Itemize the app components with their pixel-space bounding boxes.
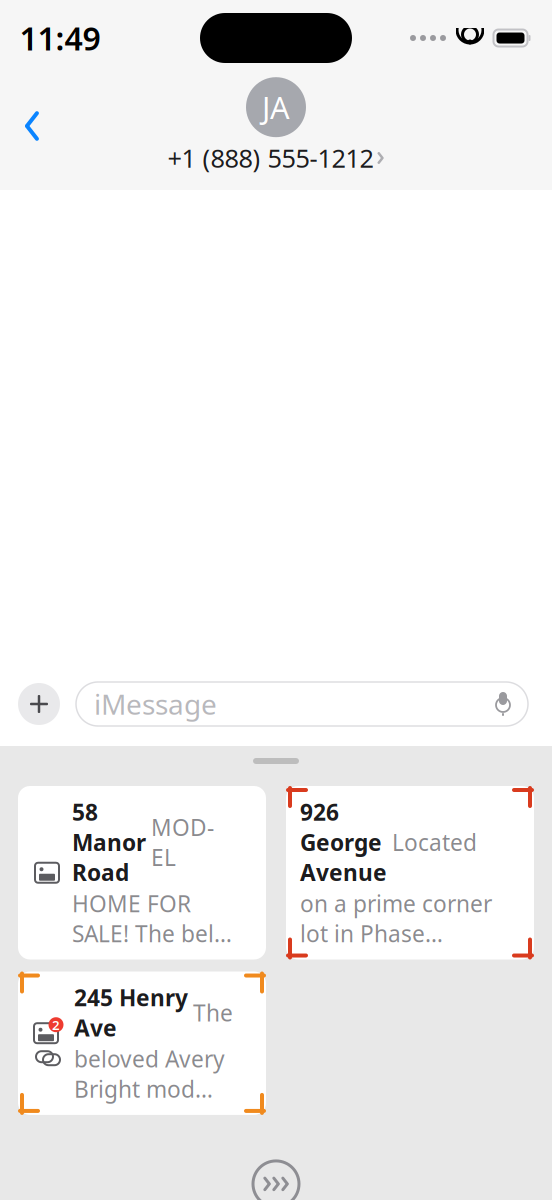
button[interactable]: Back	[10, 98, 54, 154]
button[interactable]: 58 Manor Road	[18, 786, 266, 959]
button[interactable]: iMessage	[76, 682, 528, 726]
staticText: 2	[52, 1016, 60, 1034]
staticText: The	[193, 998, 233, 1028]
staticText: +1 (888) 555-1212	[167, 141, 373, 175]
button[interactable]: 926 George Avenue	[286, 786, 534, 959]
staticText: JA	[262, 87, 290, 127]
staticText: HOME FOR SALE! The bel…	[72, 888, 232, 948]
staticText: 58 Manor Road	[72, 797, 146, 887]
staticText: MODEL	[151, 812, 214, 872]
staticText: 926 George Avenue	[300, 797, 387, 887]
staticText: on a prime corner lot in Phase…	[300, 888, 492, 948]
button[interactable]: 2	[18, 971, 266, 1115]
staticText: beloved Avery Bright mod…	[74, 1044, 225, 1104]
staticText: 245 Henry Ave	[74, 982, 188, 1043]
staticText: Located	[392, 827, 477, 857]
staticText: 11:49	[19, 17, 100, 59]
button[interactable]: Add attachment	[18, 683, 60, 725]
staticText: iMessage	[94, 685, 217, 723]
